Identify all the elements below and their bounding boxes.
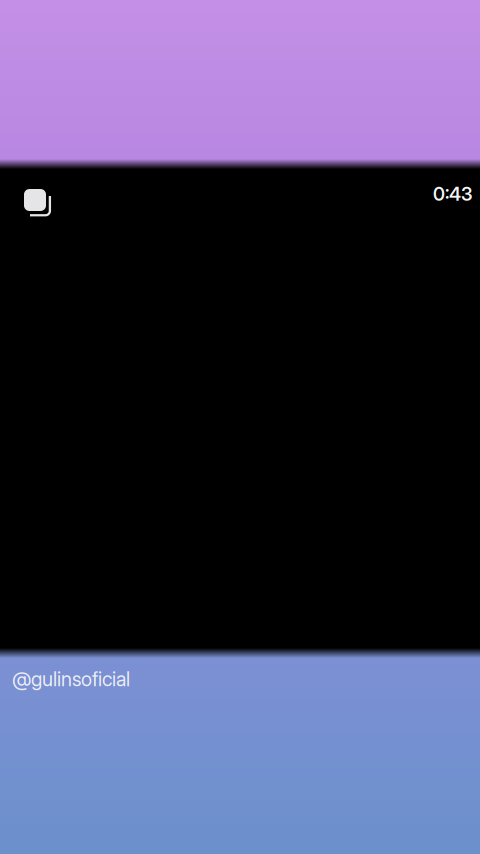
button[interactable]: Duplicate clip — [13, 178, 57, 222]
staticText: @gulinsoficial — [12, 667, 130, 691]
staticText: 0:43 — [433, 183, 472, 205]
